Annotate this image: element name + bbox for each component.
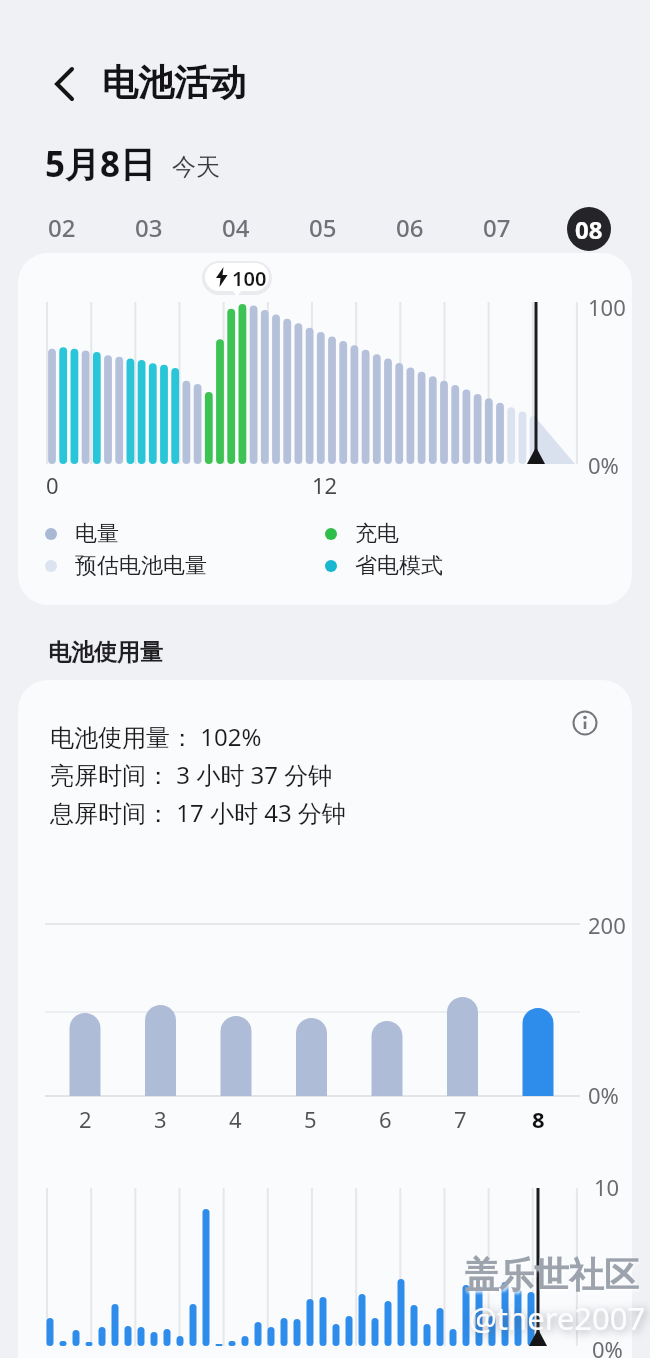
button[interactable]: 06 bbox=[380, 208, 440, 246]
staticText: 05 bbox=[309, 211, 337, 244]
button[interactable]: 03 bbox=[119, 208, 179, 246]
staticText: 0% bbox=[588, 450, 619, 480]
staticText: 08 bbox=[575, 213, 603, 246]
button[interactable] bbox=[18, 253, 632, 605]
staticText: 盖乐世社区 bbox=[464, 1253, 639, 1297]
staticText: 200 bbox=[588, 910, 626, 940]
button[interactable]: 08 bbox=[567, 207, 611, 251]
staticText: @there2007 bbox=[469, 1297, 646, 1339]
staticText: 4 bbox=[229, 1104, 242, 1134]
button[interactable]: 02 bbox=[32, 208, 92, 246]
staticText: 04 bbox=[222, 211, 250, 244]
button[interactable]: 05 bbox=[293, 208, 353, 246]
staticText: 预估电池电量 bbox=[75, 552, 207, 580]
button[interactable] bbox=[570, 708, 600, 738]
button[interactable] bbox=[18, 680, 632, 1358]
staticText: 07 bbox=[483, 211, 511, 244]
staticText: 0% bbox=[588, 1080, 619, 1110]
staticText: 0% bbox=[592, 1334, 623, 1358]
staticText: 02 bbox=[48, 211, 76, 244]
staticText: 03 bbox=[135, 211, 163, 244]
staticText: 100 bbox=[232, 265, 267, 292]
staticText: 电量 bbox=[75, 520, 119, 548]
staticText: 5月8日 bbox=[45, 140, 156, 188]
staticText: 电池使用量 bbox=[48, 638, 163, 667]
button[interactable]: 07 bbox=[467, 208, 527, 246]
staticText: 2 bbox=[79, 1104, 92, 1134]
button[interactable] bbox=[46, 64, 86, 104]
staticText: 100 bbox=[588, 292, 626, 322]
staticText: 充电 bbox=[355, 520, 399, 548]
staticText: 0 bbox=[46, 470, 59, 500]
staticText: 6 bbox=[379, 1104, 392, 1134]
staticText: 10 bbox=[594, 1172, 620, 1202]
staticText: 7 bbox=[454, 1104, 467, 1134]
staticText: 电池活动 bbox=[102, 60, 246, 105]
staticText: 8 bbox=[532, 1104, 545, 1134]
staticText: 亮屏时间： 3 小时 37 分钟 bbox=[50, 758, 333, 791]
staticText: 息屏时间： 17 小时 43 分钟 bbox=[50, 796, 346, 829]
staticText: 5 bbox=[304, 1104, 317, 1134]
staticText: 12 bbox=[312, 470, 338, 500]
button[interactable]: 04 bbox=[206, 208, 266, 246]
staticText: 今天 bbox=[172, 152, 220, 182]
staticText: 省电模式 bbox=[355, 552, 443, 580]
staticText: 电池使用量： 102% bbox=[50, 720, 262, 753]
staticText: 3 bbox=[154, 1104, 167, 1134]
staticText: 06 bbox=[396, 211, 424, 244]
